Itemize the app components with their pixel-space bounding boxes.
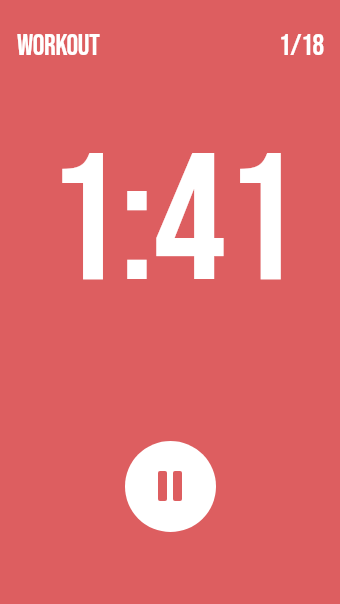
staticText: WORKOUT bbox=[17, 29, 100, 64]
staticText: 1/18 bbox=[279, 29, 324, 64]
staticText: 1:41 bbox=[48, 117, 298, 333]
button[interactable]: Pause workout bbox=[125, 441, 216, 532]
